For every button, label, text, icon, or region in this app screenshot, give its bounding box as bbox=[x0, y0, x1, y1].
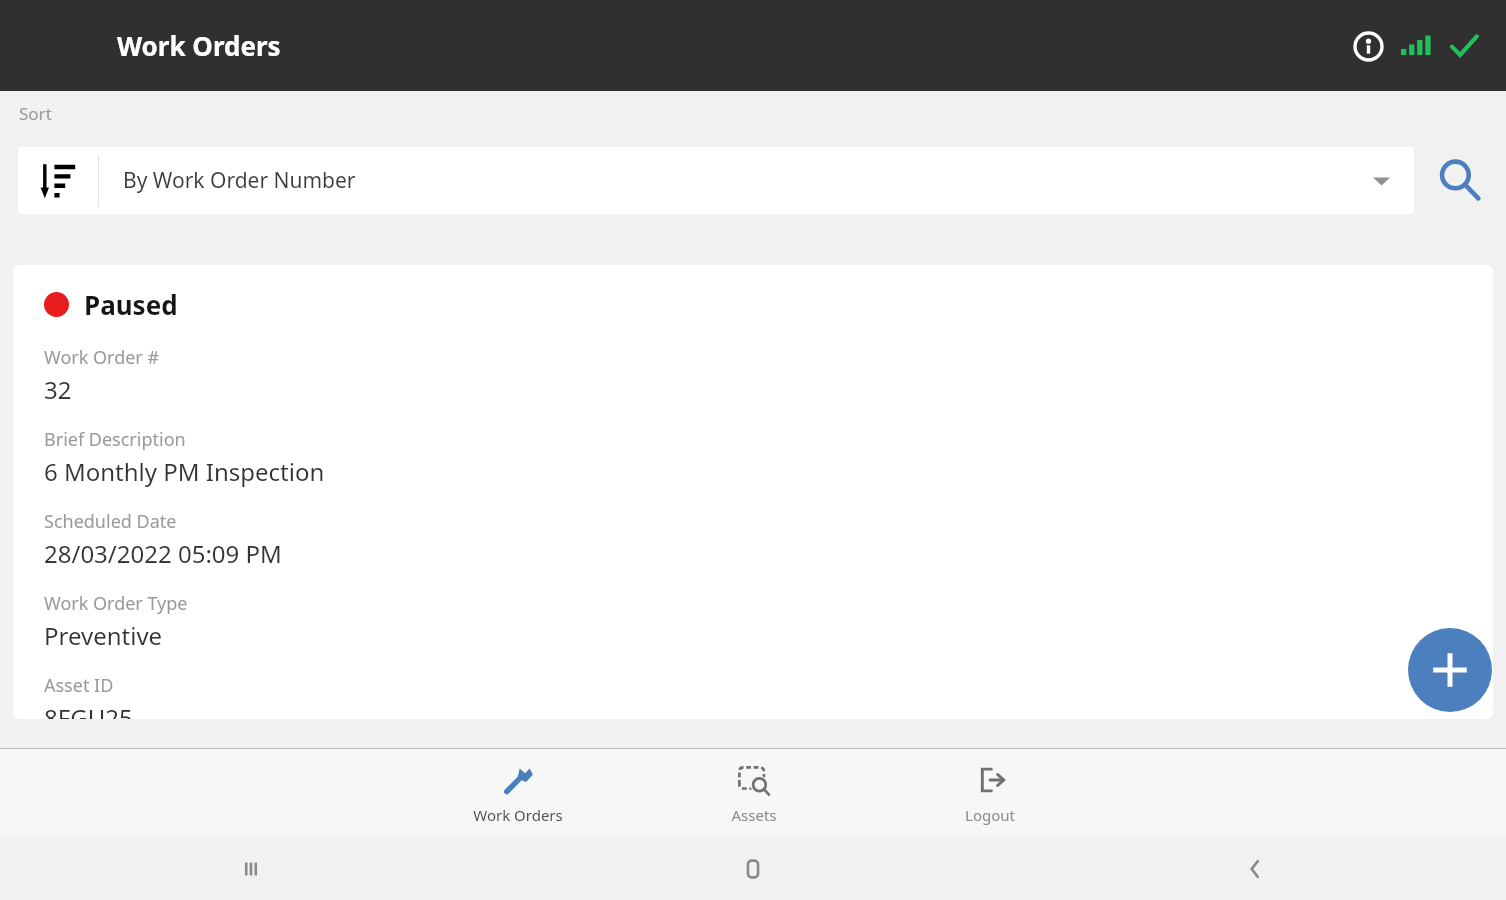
staticText: Assets bbox=[731, 805, 777, 825]
staticText: Work Order Type bbox=[44, 591, 188, 616]
staticText: Logout bbox=[965, 805, 1015, 825]
button[interactable]: Paused bbox=[13, 265, 1493, 719]
staticText: Preventive bbox=[44, 619, 163, 652]
staticText: 8FGU25 bbox=[44, 701, 133, 719]
button[interactable]: Search bbox=[1414, 134, 1506, 226]
staticText: Brief Description bbox=[44, 427, 186, 452]
staticText: 28/03/2022 05:09 PM bbox=[44, 537, 282, 570]
button[interactable]: By Work Order Number bbox=[18, 147, 1414, 214]
staticText: By Work Order Number bbox=[123, 166, 1373, 195]
button[interactable]: Synced bbox=[1440, 22, 1488, 70]
staticText: Scheduled Date bbox=[44, 509, 177, 534]
button[interactable]: Home bbox=[502, 837, 1004, 900]
button[interactable]: Back bbox=[1004, 837, 1506, 900]
button[interactable]: Work Orders bbox=[400, 749, 636, 837]
button[interactable]: Logout bbox=[872, 749, 1108, 837]
staticText: Asset ID bbox=[44, 673, 114, 698]
button[interactable]: Assets bbox=[636, 749, 872, 837]
button[interactable]: Recent apps bbox=[0, 837, 502, 900]
button[interactable]: Add work order bbox=[1408, 628, 1492, 712]
staticText: Work Order # bbox=[44, 345, 160, 370]
staticText: Paused bbox=[84, 287, 178, 322]
button[interactable]: Signal strength bbox=[1392, 22, 1440, 70]
button[interactable]: Information bbox=[1344, 22, 1392, 70]
staticText: Work Orders bbox=[117, 28, 281, 63]
staticText: 32 bbox=[44, 373, 72, 406]
staticText: Work Orders bbox=[473, 805, 563, 825]
staticText: 6 Monthly PM Inspection bbox=[44, 455, 325, 488]
staticText: Sort bbox=[19, 102, 52, 125]
